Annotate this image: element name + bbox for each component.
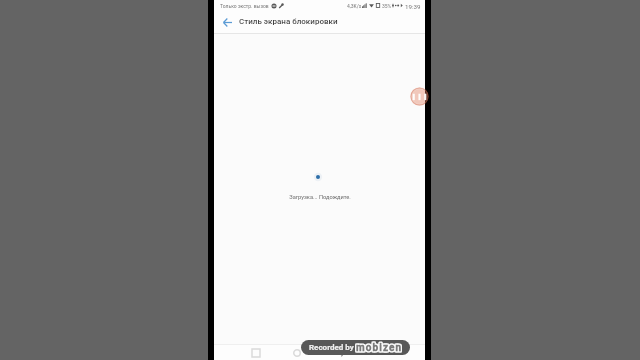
button[interactable]: Back [219,12,235,33]
staticText: mobizen [355,341,402,353]
staticText: mobizen [357,343,404,355]
staticText: mobizen [356,342,403,354]
staticText: Только экстр. вызов [220,3,269,9]
staticText: mobizen [357,341,404,353]
staticText: mobizen [355,343,402,355]
staticText: Загрузка... Подождите. [289,194,351,201]
button[interactable]: Home [289,345,305,360]
staticText: 35% [382,3,392,9]
staticText: mobizen [356,343,403,355]
staticText: 19:39 [405,3,421,10]
staticText: Стиль экрана блокировки [239,17,338,26]
staticText: Recorded by [309,343,354,352]
button[interactable]: Recorded by Mobizen [301,340,410,355]
button[interactable]: Recent apps [248,345,264,360]
staticText: mobizen [356,341,403,353]
staticText: mobizen [356,342,403,354]
staticText: mobizen [355,342,402,354]
staticText: 4,3K/s [347,3,362,9]
staticText: mobizen [357,342,404,354]
